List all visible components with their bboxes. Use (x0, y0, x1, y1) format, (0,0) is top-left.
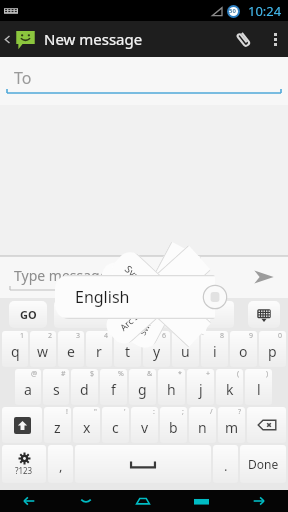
staticText: 8 (220, 331, 225, 341)
staticText: Type message (14, 266, 108, 285)
staticText: 2 (48, 331, 53, 341)
staticText: j (199, 380, 203, 399)
staticText: # (61, 369, 66, 379)
staticText: 50 (229, 7, 236, 15)
button[interactable]: / (189, 407, 216, 443)
staticText: p (268, 342, 277, 361)
staticText: " (94, 407, 97, 417)
staticText: ' (124, 407, 126, 417)
button[interactable]: $ (71, 369, 98, 405)
button[interactable]: . (213, 445, 238, 483)
staticText: Arc Settings (117, 290, 163, 333)
button[interactable]: ! (44, 407, 71, 443)
staticText: + (206, 369, 211, 379)
button[interactable]: 8 (201, 331, 228, 367)
staticText: 10:24 (248, 2, 282, 20)
button[interactable]: Forward (230, 490, 288, 512)
staticText: : (153, 407, 155, 417)
button[interactable]: ) (245, 369, 272, 405)
staticText: l (257, 380, 261, 399)
button[interactable]: Symbols and settings (2, 445, 46, 483)
staticText: w (37, 342, 49, 361)
button[interactable]: @ (15, 369, 41, 405)
button[interactable]: To (0, 57, 288, 105)
staticText: New message (44, 29, 143, 49)
staticText: i (213, 342, 217, 361)
button[interactable]: 5 (114, 331, 141, 367)
button[interactable]: 7 (172, 331, 199, 367)
staticText: o (239, 342, 248, 361)
staticText: k (226, 380, 234, 399)
staticText: a (24, 380, 32, 399)
button[interactable]: Backspace (247, 407, 286, 443)
staticText: ; (182, 407, 184, 417)
staticText: 6 (162, 331, 167, 341)
button[interactable]: Send (240, 256, 288, 298)
staticText: f (111, 380, 116, 399)
button[interactable]: 9 (230, 331, 257, 367)
staticText: & (147, 369, 153, 379)
button[interactable]: 1 (2, 331, 28, 367)
staticText: / (210, 407, 213, 417)
staticText: 0 (278, 331, 283, 341)
staticText: 9 (249, 331, 254, 341)
button[interactable]: Hide keyboard (57, 490, 114, 512)
staticText: ! (66, 407, 68, 417)
button[interactable]: GO (9, 301, 47, 328)
staticText: x (83, 418, 91, 437)
button[interactable]: ; (160, 407, 187, 443)
staticText: @ (31, 369, 38, 379)
button[interactable]: : (131, 407, 158, 443)
button[interactable]: 2 (30, 331, 56, 367)
button[interactable]: # (43, 369, 69, 405)
button[interactable] (0, 21, 40, 57)
button[interactable]: Digital (95, 258, 217, 336)
button[interactable]: ? (218, 407, 245, 443)
staticText: 3 (76, 331, 81, 341)
button[interactable]: Attach (226, 21, 262, 57)
button[interactable]: Back (0, 490, 57, 512)
staticText: ? (238, 407, 242, 417)
staticText: 1 (20, 331, 25, 341)
button[interactable]: + (187, 369, 214, 405)
button[interactable]: Shift (2, 407, 42, 443)
button[interactable]: , (48, 445, 73, 483)
staticText: Done (248, 456, 279, 472)
button[interactable]: Arc Settings (101, 245, 211, 349)
staticText: e (67, 342, 75, 361)
staticText: b (169, 418, 178, 437)
button[interactable]: % (100, 369, 127, 405)
staticText: 4 (104, 331, 109, 341)
button[interactable]: 3 (58, 331, 84, 367)
staticText: r (96, 342, 102, 361)
button[interactable]: Keyboard settings (248, 301, 280, 328)
button[interactable]: Symbols (106, 246, 212, 348)
button[interactable] (54, 301, 234, 328)
button[interactable]: * (158, 369, 185, 405)
button[interactable]: 0 (259, 331, 286, 367)
staticText: GO (20, 307, 37, 322)
button[interactable]: & (129, 369, 156, 405)
button[interactable]: Switch layout (121, 241, 201, 353)
button[interactable]: Type message (0, 256, 230, 298)
button[interactable]: Done (240, 445, 286, 483)
button[interactable]: Space (75, 445, 211, 483)
staticText: $ (90, 369, 95, 379)
button[interactable]: " (73, 407, 100, 443)
button[interactable]: ' (102, 407, 129, 443)
staticText: , (59, 457, 63, 475)
staticText: u (181, 342, 190, 361)
button[interactable]: 4 (86, 331, 112, 367)
button[interactable]: Keyboard layout picker (202, 284, 228, 310)
button[interactable]: More options (262, 21, 288, 57)
staticText: . (224, 457, 228, 475)
staticText: Switch layout (137, 288, 170, 337)
button[interactable]: Home (114, 490, 172, 512)
button[interactable]: 6 (143, 331, 170, 367)
staticText: 5 (133, 331, 138, 341)
staticText: Symbols (122, 262, 161, 299)
button[interactable]: English (55, 275, 215, 319)
button[interactable]: ( (216, 369, 243, 405)
button[interactable]: Recent apps (172, 490, 230, 512)
